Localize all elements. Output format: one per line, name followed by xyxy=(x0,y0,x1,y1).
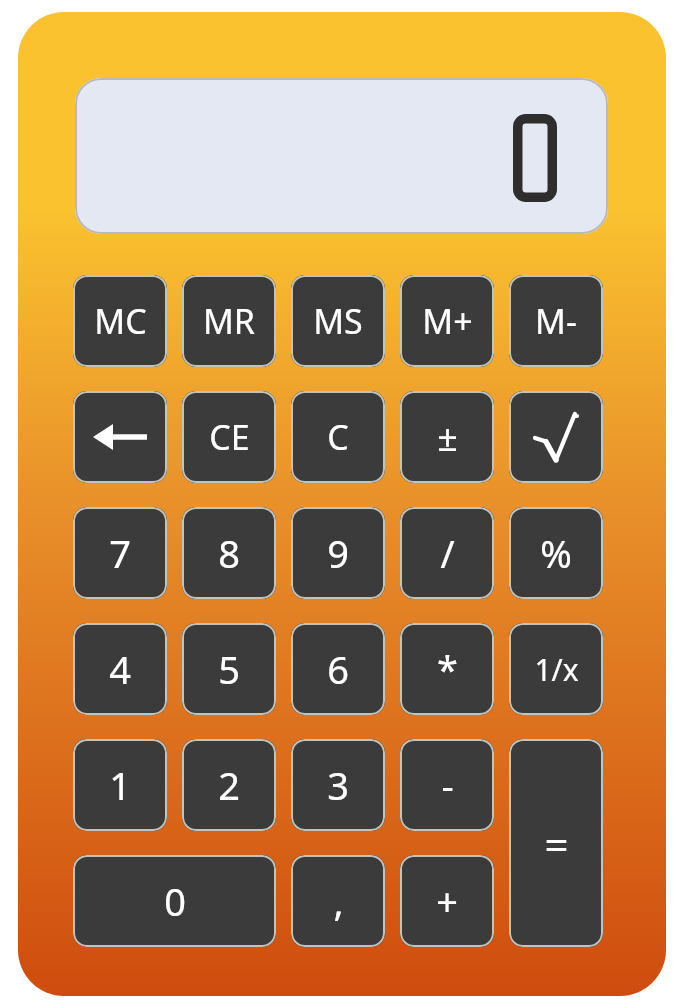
staticText: 9 xyxy=(327,527,349,579)
button[interactable]: M- xyxy=(509,275,603,367)
button[interactable]: = xyxy=(509,739,603,947)
button[interactable]: 4 xyxy=(73,623,167,715)
button[interactable] xyxy=(75,78,608,234)
staticText: 6 xyxy=(327,643,349,695)
staticText: ± xyxy=(437,413,458,462)
staticText: M- xyxy=(535,298,577,344)
staticText: 2 xyxy=(218,759,240,811)
staticText: 7 xyxy=(109,527,131,579)
button[interactable]: 5 xyxy=(182,623,276,715)
button[interactable]: Square root xyxy=(509,391,603,483)
staticText: / xyxy=(440,527,455,579)
button[interactable]: MS xyxy=(291,275,385,367)
button[interactable]: 1 xyxy=(73,739,167,831)
button[interactable]: - xyxy=(400,739,494,831)
staticText: 5 xyxy=(218,643,240,695)
button[interactable]: / xyxy=(400,507,494,599)
button[interactable]: + xyxy=(400,855,494,947)
button[interactable]: * xyxy=(400,623,494,715)
button[interactable]: 1/x xyxy=(509,623,603,715)
button[interactable]: 8 xyxy=(182,507,276,599)
button[interactable]: , xyxy=(291,855,385,947)
staticText: 4 xyxy=(109,643,131,695)
staticText: - xyxy=(441,759,454,811)
button[interactable]: Backspace xyxy=(73,391,167,483)
button[interactable]: MR xyxy=(182,275,276,367)
staticText: M+ xyxy=(422,298,473,344)
button[interactable]: CE xyxy=(182,391,276,483)
staticText: MR xyxy=(203,298,255,344)
staticText: MC xyxy=(94,298,147,344)
staticText: 8 xyxy=(218,527,240,579)
staticText: 1/x xyxy=(534,649,579,690)
button[interactable]: ± xyxy=(400,391,494,483)
button[interactable]: C xyxy=(291,391,385,483)
button[interactable]: 9 xyxy=(291,507,385,599)
staticText: 3 xyxy=(327,759,349,811)
staticText: CE xyxy=(209,414,250,460)
staticText: + xyxy=(436,875,458,927)
button[interactable]: 0 xyxy=(73,855,276,947)
staticText: , xyxy=(333,875,344,927)
staticText: 0 xyxy=(164,875,186,927)
staticText: C xyxy=(327,414,349,460)
button[interactable]: 7 xyxy=(73,507,167,599)
staticText: = xyxy=(544,815,569,872)
staticText: % xyxy=(540,527,572,579)
button[interactable]: 3 xyxy=(291,739,385,831)
staticText: * xyxy=(437,643,458,695)
button[interactable]: MC xyxy=(73,275,167,367)
staticText: MS xyxy=(313,298,363,344)
button[interactable]: M+ xyxy=(400,275,494,367)
button[interactable]: % xyxy=(509,507,603,599)
button[interactable]: 6 xyxy=(291,623,385,715)
staticText: 1 xyxy=(109,759,131,811)
button[interactable]: 2 xyxy=(182,739,276,831)
